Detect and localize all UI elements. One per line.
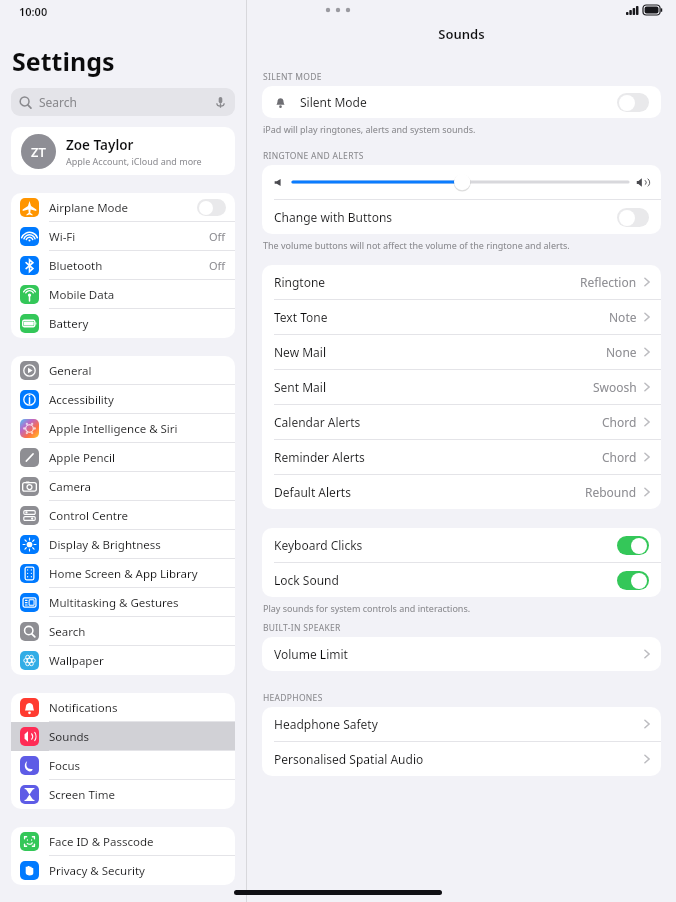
button[interactable]: Screen Time: [11, 780, 235, 809]
staticText: Battery: [49, 316, 89, 332]
staticText: The volume buttons will not affect the v…: [263, 239, 570, 251]
staticText: Change with Buttons: [274, 209, 393, 225]
staticText: 10:00: [19, 4, 48, 19]
staticText: Default Alerts: [274, 484, 351, 500]
button[interactable]: Display & Brightness: [11, 530, 235, 559]
button[interactable]: Off: [617, 93, 649, 112]
staticText: Sent Mail: [274, 379, 327, 395]
staticText: ZT: [31, 143, 46, 161]
staticText: Search: [39, 94, 77, 110]
staticText: Privacy & Security: [49, 863, 145, 879]
staticText: Off: [209, 229, 226, 244]
staticText: Reminder Alerts: [274, 449, 365, 465]
button[interactable]: Multitasking & Gestures: [11, 588, 235, 617]
staticText: Ringtone: [274, 274, 326, 290]
staticText: Personalised Spatial Audio: [274, 751, 424, 767]
button[interactable]: Sent Mail: [262, 370, 661, 404]
staticText: RINGTONE AND ALERTS: [263, 150, 364, 162]
button[interactable]: Accessibility: [11, 385, 235, 414]
button[interactable]: Airplane Mode: [11, 193, 235, 222]
button[interactable]: Volume Limit: [262, 637, 661, 671]
button[interactable]: Text Tone: [262, 300, 661, 334]
staticText: Rebound: [585, 484, 637, 500]
staticText: Chord: [602, 449, 637, 465]
staticText: Multitasking & Gestures: [49, 595, 179, 611]
staticText: Control Centre: [49, 508, 128, 524]
button[interactable]: General: [11, 356, 235, 385]
button[interactable]: Default Alerts: [262, 475, 661, 509]
staticText: Keyboard Clicks: [274, 537, 363, 553]
button[interactable]: Apple Intelligence & Siri: [11, 414, 235, 443]
button[interactable]: Camera: [11, 472, 235, 501]
staticText: None: [606, 344, 637, 360]
staticText: HEADPHONES: [263, 692, 323, 704]
staticText: Lock Sound: [274, 572, 339, 588]
button[interactable]: Search: [11, 617, 235, 646]
button[interactable]: Privacy & Security: [11, 856, 235, 885]
staticText: Sounds: [438, 25, 485, 43]
button[interactable]: Notifications: [11, 693, 235, 722]
button[interactable]: Silent Mode: [262, 86, 661, 118]
button[interactable]: Wi-Fi: [11, 222, 235, 251]
button[interactable]: Keyboard Clicks: [262, 528, 661, 562]
staticText: SILENT MODE: [263, 71, 322, 83]
button[interactable]: Reminder Alerts: [262, 440, 661, 474]
staticText: BUILT-IN SPEAKER: [263, 622, 341, 634]
button[interactable]: Lock Sound: [262, 563, 661, 597]
staticText: Volume Limit: [274, 646, 348, 662]
button[interactable]: Face ID & Passcode: [11, 827, 235, 856]
staticText: Screen Time: [49, 787, 116, 803]
staticText: Text Tone: [274, 309, 328, 325]
staticText: Display & Brightness: [49, 537, 161, 553]
staticText: Home Screen & App Library: [49, 566, 198, 582]
staticText: Sounds: [49, 729, 90, 745]
staticText: Off: [209, 258, 226, 273]
staticText: Notifications: [49, 700, 118, 716]
button[interactable]: New Mail: [262, 335, 661, 369]
button[interactable]: Home Screen & App Library: [11, 559, 235, 588]
staticText: Search: [49, 624, 86, 640]
staticText: Camera: [49, 479, 91, 495]
button[interactable]: Personalised Spatial Audio: [262, 742, 661, 776]
button[interactable]: Ringtone: [262, 265, 661, 299]
button[interactable]: Calendar Alerts: [262, 405, 661, 439]
staticText: Wi-Fi: [49, 229, 76, 245]
button[interactable]: On: [617, 536, 649, 555]
staticText: Note: [609, 309, 637, 325]
staticText: New Mail: [274, 344, 327, 360]
staticText: Face ID & Passcode: [49, 834, 154, 850]
staticText: Chord: [602, 414, 637, 430]
button[interactable]: Change with Buttons: [262, 200, 661, 234]
staticText: Apple Intelligence & Siri: [49, 421, 178, 437]
staticText: Headphone Safety: [274, 716, 378, 732]
staticText: Apple Account, iCloud and more: [66, 155, 202, 167]
staticText: Silent Mode: [300, 94, 367, 110]
staticText: Wallpaper: [49, 653, 104, 669]
button[interactable]: Control Centre: [11, 501, 235, 530]
staticText: iPad will play ringtones, alerts and sys…: [263, 123, 476, 135]
button[interactable]: ZT: [11, 127, 235, 175]
staticText: Play sounds for system controls and inte…: [263, 602, 471, 614]
staticText: Apple Pencil: [49, 450, 115, 466]
staticText: Bluetooth: [49, 258, 103, 274]
staticText: Accessibility: [49, 392, 114, 408]
button[interactable]: Mobile Data: [11, 280, 235, 309]
button[interactable]: On: [617, 571, 649, 590]
button[interactable]: Off: [197, 199, 226, 216]
button[interactable]: Sounds: [11, 722, 235, 751]
button[interactable]: Off: [617, 208, 649, 227]
staticText: Swoosh: [593, 379, 637, 395]
staticText: Mobile Data: [49, 287, 115, 303]
button[interactable]: Focus: [11, 751, 235, 780]
button[interactable]: Headphone Safety: [262, 707, 661, 741]
button[interactable]: Search: [11, 88, 235, 116]
staticText: Zoe Taylor: [66, 136, 134, 154]
button[interactable]: Bluetooth: [11, 251, 235, 280]
other: Multitasking: [325, 7, 345, 13]
staticText: Settings: [12, 44, 115, 78]
staticText: Calendar Alerts: [274, 414, 361, 430]
staticText: General: [49, 363, 92, 379]
button[interactable]: Battery: [11, 309, 235, 338]
button[interactable]: Wallpaper: [11, 646, 235, 675]
button[interactable]: Apple Pencil: [11, 443, 235, 472]
